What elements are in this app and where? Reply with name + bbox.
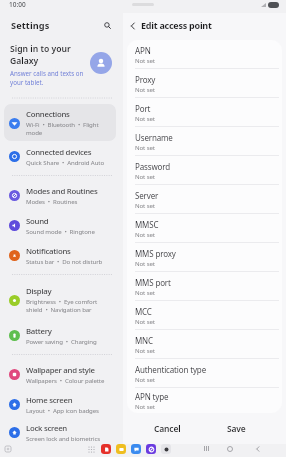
button[interactable]: App [161, 444, 171, 454]
button[interactable]: MNC [127, 330, 282, 358]
staticText: Authentication type [135, 364, 206, 375]
button[interactable]: App [131, 444, 141, 454]
staticText: Sound mode • Ringtone [26, 227, 95, 235]
button[interactable]: Modes and Routines [4, 180, 116, 210]
staticText: Cancel [154, 423, 181, 435]
staticText: Server [135, 190, 159, 201]
button[interactable]: Authentication type [127, 359, 282, 387]
staticText: Not set [135, 259, 155, 267]
staticText: MMS proxy [135, 248, 176, 259]
staticText: Not set [135, 172, 155, 180]
staticText: Not set [135, 346, 155, 354]
button[interactable]: Wallpaper and style [4, 359, 116, 390]
button[interactable]: Server [127, 185, 282, 213]
staticText: Connected devices [26, 147, 92, 158]
button[interactable]: App [101, 444, 111, 454]
staticText: Wallpapers • Colour palette [26, 376, 105, 384]
staticText: Home screen [26, 395, 73, 406]
button[interactable]: Password [127, 156, 282, 184]
staticText: Save [227, 423, 246, 435]
staticText: Not set [135, 143, 155, 151]
staticText: Layout • App icon badges [26, 406, 99, 414]
staticText: MNC [135, 335, 153, 346]
staticText: Edit access point [141, 19, 212, 31]
button[interactable]: Username [127, 127, 282, 155]
button[interactable]: App [146, 444, 156, 454]
staticText: Not set [135, 201, 155, 209]
staticText: Password [135, 161, 170, 172]
staticText: Connections [26, 109, 70, 120]
button[interactable]: Connected devices [4, 141, 116, 171]
button[interactable]: APN type [127, 388, 282, 413]
button[interactable]: Display [4, 279, 116, 320]
staticText: Not set [135, 317, 155, 325]
button[interactable]: Back [124, 17, 141, 34]
staticText: Port [135, 103, 151, 114]
staticText: Not set [135, 375, 155, 383]
staticText: Quick Share • Android Auto [26, 158, 104, 166]
staticText: Not set [135, 288, 155, 296]
staticText: Not set [135, 402, 155, 410]
button[interactable]: App [116, 444, 126, 454]
staticText: Battery [26, 326, 52, 337]
staticText: Brightness • Eye comfort shield • Naviga… [26, 297, 111, 314]
staticText: Settings [11, 19, 50, 32]
staticText: APN [135, 45, 151, 56]
staticText: Answer calls and texts on your tablet. [10, 69, 84, 87]
button[interactable]: Search [100, 18, 115, 33]
button[interactable]: Cancel [145, 421, 190, 436]
button[interactable]: All apps [87, 445, 96, 454]
button[interactable]: Home screen [4, 390, 116, 418]
staticText: MCC [135, 306, 152, 317]
staticText: Modes and Routines [26, 186, 98, 197]
staticText: Lock screen [26, 423, 67, 434]
button[interactable]: Sign in to your Galaxy [0, 37, 123, 92]
button[interactable]: Sound [4, 210, 116, 240]
staticText: Display [26, 286, 52, 297]
button[interactable]: MMS proxy [127, 243, 282, 271]
button[interactable]: Notifications [4, 240, 116, 270]
staticText: Notifications [26, 246, 71, 257]
staticText: Power saving • Charging [26, 337, 97, 345]
button[interactable]: Save [214, 421, 259, 436]
staticText: Sound [26, 216, 49, 227]
button[interactable]: Recents [201, 443, 212, 454]
staticText: Wallpaper and style [26, 365, 95, 376]
button[interactable]: MMS port [127, 272, 282, 300]
staticText: Proxy [135, 74, 156, 85]
button[interactable]: APN [127, 40, 282, 68]
staticText: MMS port [135, 277, 171, 288]
button[interactable]: Edge panel [3, 444, 13, 454]
button[interactable]: Proxy [127, 69, 282, 97]
button[interactable]: Lock screen [4, 418, 116, 446]
staticText: Modes • Routines [26, 197, 78, 205]
staticText: APN type [135, 391, 169, 402]
staticText: 10:00 [9, 0, 26, 9]
button[interactable]: MMSC [127, 214, 282, 242]
staticText: Username [135, 132, 173, 143]
staticText: Wi-Fi • Bluetooth • Flight mode [26, 120, 111, 137]
staticText: MMSC [135, 219, 159, 230]
staticText: Not set [135, 85, 155, 93]
button[interactable]: Connections [4, 104, 116, 141]
button[interactable]: MCC [127, 301, 282, 329]
button[interactable]: Battery [4, 320, 116, 350]
staticText: Sign in to your Galaxy [10, 43, 71, 67]
staticText: Not set [135, 56, 155, 64]
button[interactable]: Back [252, 443, 263, 454]
staticText: Not set [135, 114, 155, 122]
staticText: Not set [135, 230, 155, 238]
staticText: Screen lock and biometrics [26, 434, 101, 442]
button[interactable]: Port [127, 98, 282, 126]
staticText: Status bar • Do not disturb [26, 257, 103, 265]
button[interactable]: Home [224, 443, 235, 454]
